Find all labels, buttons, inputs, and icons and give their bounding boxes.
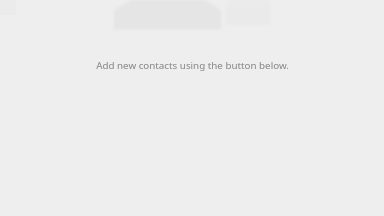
- other: No contacts illustration: [0, 0, 384, 216]
- staticText: Add new contacts using the button below.: [96, 59, 289, 72]
